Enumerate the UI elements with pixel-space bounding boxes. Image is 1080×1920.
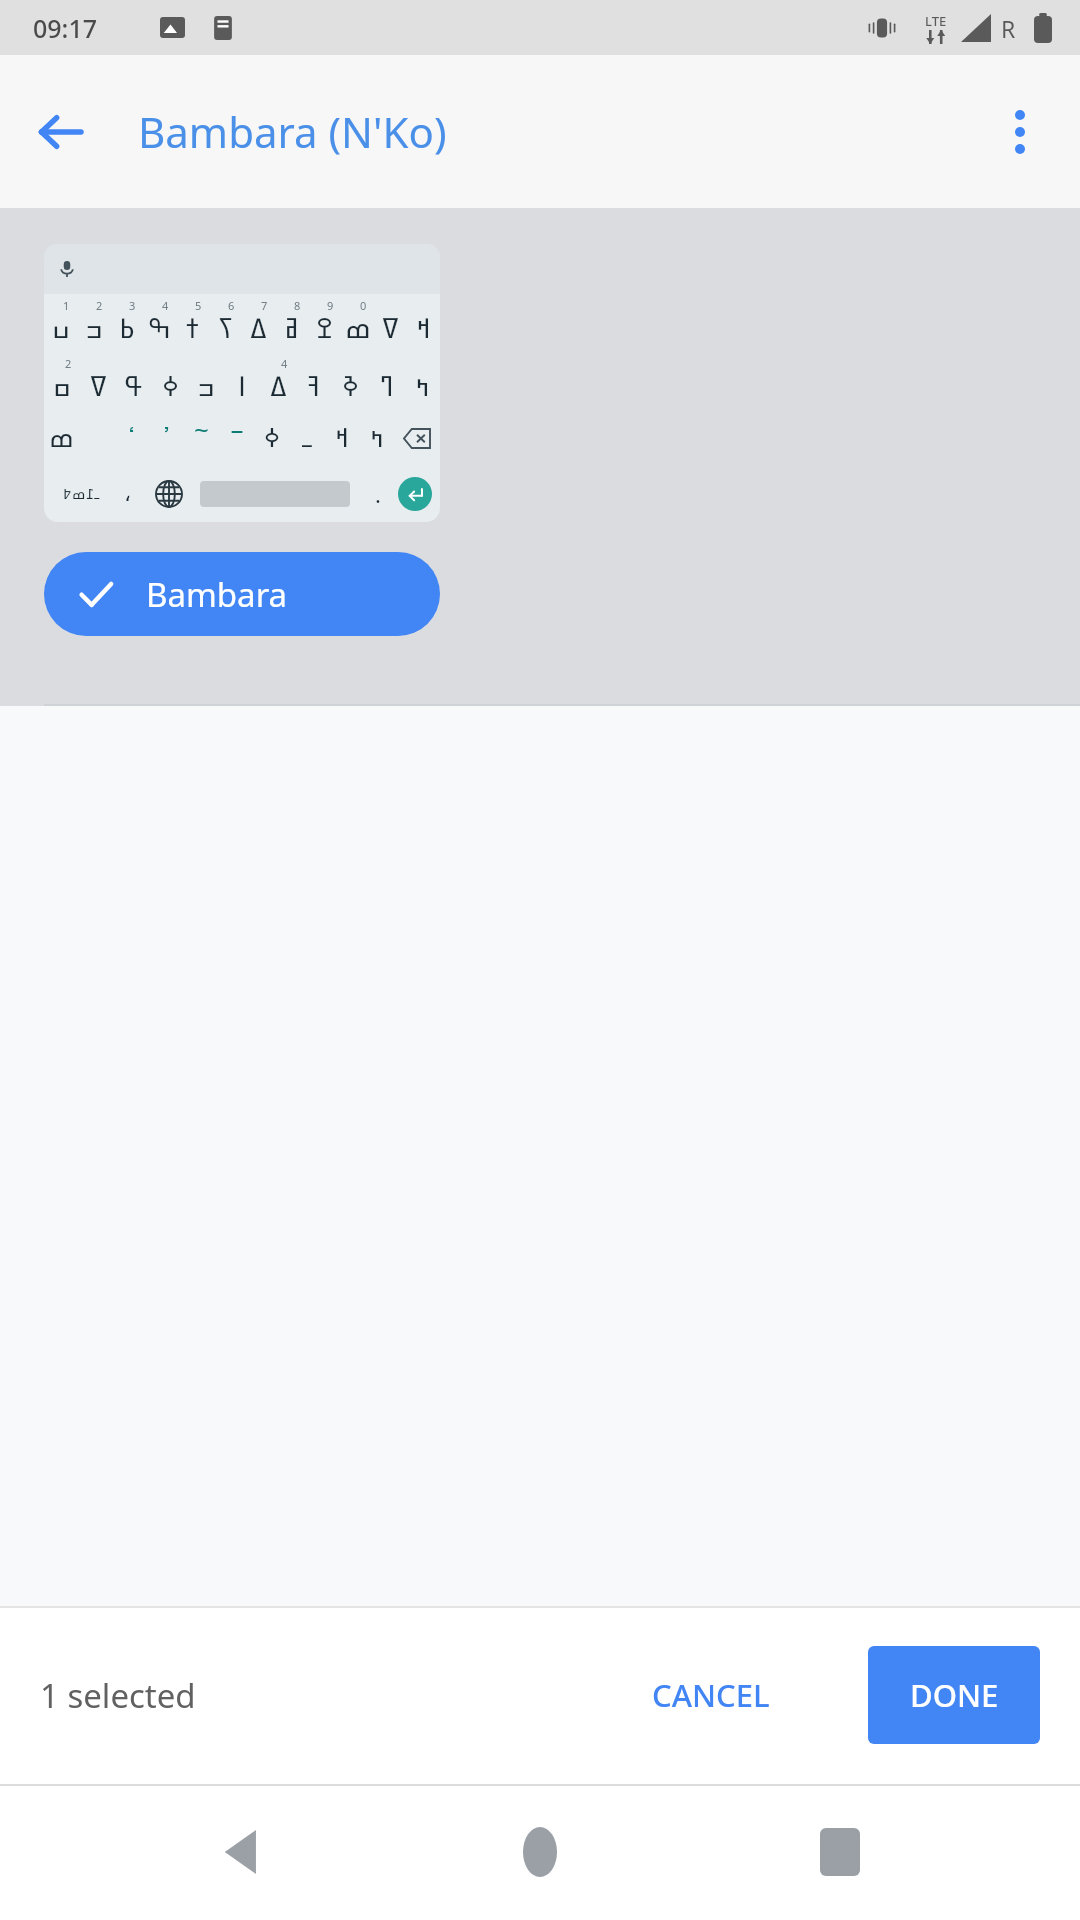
staticText: LTE [925,12,947,30]
staticText: ߘ [49,423,74,453]
staticText: CANCEL [652,1674,770,1716]
staticText: 2 [96,298,103,313]
staticText: ߜ [90,371,107,402]
staticText: ߥ [284,313,299,344]
button[interactable]: 7 [242,294,275,352]
staticText: ߡ [250,313,267,344]
staticText: – [230,411,244,446]
staticText: ߞ [416,313,431,344]
button[interactable]: 2 [44,352,80,410]
staticText: 2 [65,356,72,371]
staticText: ߦ [264,423,280,453]
button[interactable]: Recents [780,1792,900,1912]
button[interactable]: 9 [308,294,341,352]
staticText: ߤ [415,371,430,402]
button[interactable]: . [358,466,398,522]
staticText: ߎ [52,313,70,344]
staticText: ߟ [124,371,144,402]
staticText: ߺ߁ߘ߈ [63,486,100,502]
staticText: ߘ [345,313,371,344]
button[interactable]: ߜ [80,352,116,410]
staticText: ߴ [162,423,171,453]
staticText: ߤ [370,423,384,453]
button[interactable]: CANCEL [626,1656,796,1734]
staticText: Bambara (N'Ko) [138,103,447,160]
button[interactable]: Bambara [44,552,440,636]
staticText: ߞ [335,423,349,453]
staticText: ߢ [342,371,359,402]
button[interactable]: Home [480,1792,600,1912]
staticText: DONE [910,1674,999,1716]
button[interactable]: ߺ߁ߘ߈ [52,466,110,522]
staticText: Bambara [146,572,288,617]
button[interactable]: 1 [44,294,77,352]
staticText: ߵ [127,423,136,453]
staticText: ߺ [302,423,312,453]
staticText: 7 [261,298,268,313]
button[interactable]: ߣ [368,352,404,410]
button[interactable]: 4 [143,294,176,352]
staticText: 0 [360,298,367,313]
button[interactable]: ߤ [404,352,440,410]
staticText: 6 [228,298,235,313]
button[interactable]: ߜ [374,294,407,352]
staticText: ߊ [238,371,246,402]
staticText: . [375,479,381,509]
staticText: R [1001,13,1016,44]
button[interactable]: 6 [209,294,242,352]
staticText: 5 [195,298,202,313]
button[interactable]: 5 [176,294,209,352]
button[interactable]: Back [20,92,100,172]
staticText: 09:17 [33,11,98,45]
button[interactable]: 0 [341,294,374,352]
button[interactable]: 1 [44,244,440,522]
staticText: ߕ [119,313,135,344]
button[interactable]: 2 [77,294,110,352]
button[interactable]: ߔ [296,352,332,410]
button[interactable]: 4 [260,352,296,410]
button[interactable]: ߞ [407,294,440,352]
staticText: ߏ [85,313,103,344]
button[interactable]: Back [180,1792,300,1912]
button[interactable]: ߊ [224,352,260,410]
button[interactable]: Enter [398,477,432,511]
staticText: 1 [63,298,70,313]
staticText: ، [124,481,132,507]
staticText: ߡ [270,371,287,402]
staticText: ߛ [53,371,71,402]
staticText: ߣ [379,371,394,402]
staticText: 4 [281,356,288,371]
button[interactable]: 3 [110,294,143,352]
button[interactable]: More options [980,92,1060,172]
staticText: ߖ [217,313,234,344]
button[interactable]: Change language [146,466,192,522]
staticText: ߜ [382,313,399,344]
staticText: 8 [294,298,301,313]
button[interactable]: DONE [868,1646,1040,1744]
staticText: ~ [194,411,209,446]
button[interactable]: Backspace [394,410,440,466]
staticText: ߙ [186,313,199,344]
button[interactable]: ߦ [152,352,188,410]
button[interactable]: ߢ [332,352,368,410]
staticText: 3 [129,298,136,313]
staticText: 1 selected [40,1673,196,1718]
staticText: ߒ [148,313,171,344]
button[interactable]: ߏ [188,352,224,410]
staticText: 4 [162,298,169,313]
staticText: 9 [327,298,334,313]
button[interactable]: 8 [275,294,308,352]
staticText: ߏ [197,371,215,402]
button[interactable]: ، [110,466,146,522]
button[interactable]: ߟ [116,352,152,410]
staticText: ߦ [162,371,179,402]
staticText: ߔ [308,371,320,402]
staticText: ߐ [316,313,333,344]
